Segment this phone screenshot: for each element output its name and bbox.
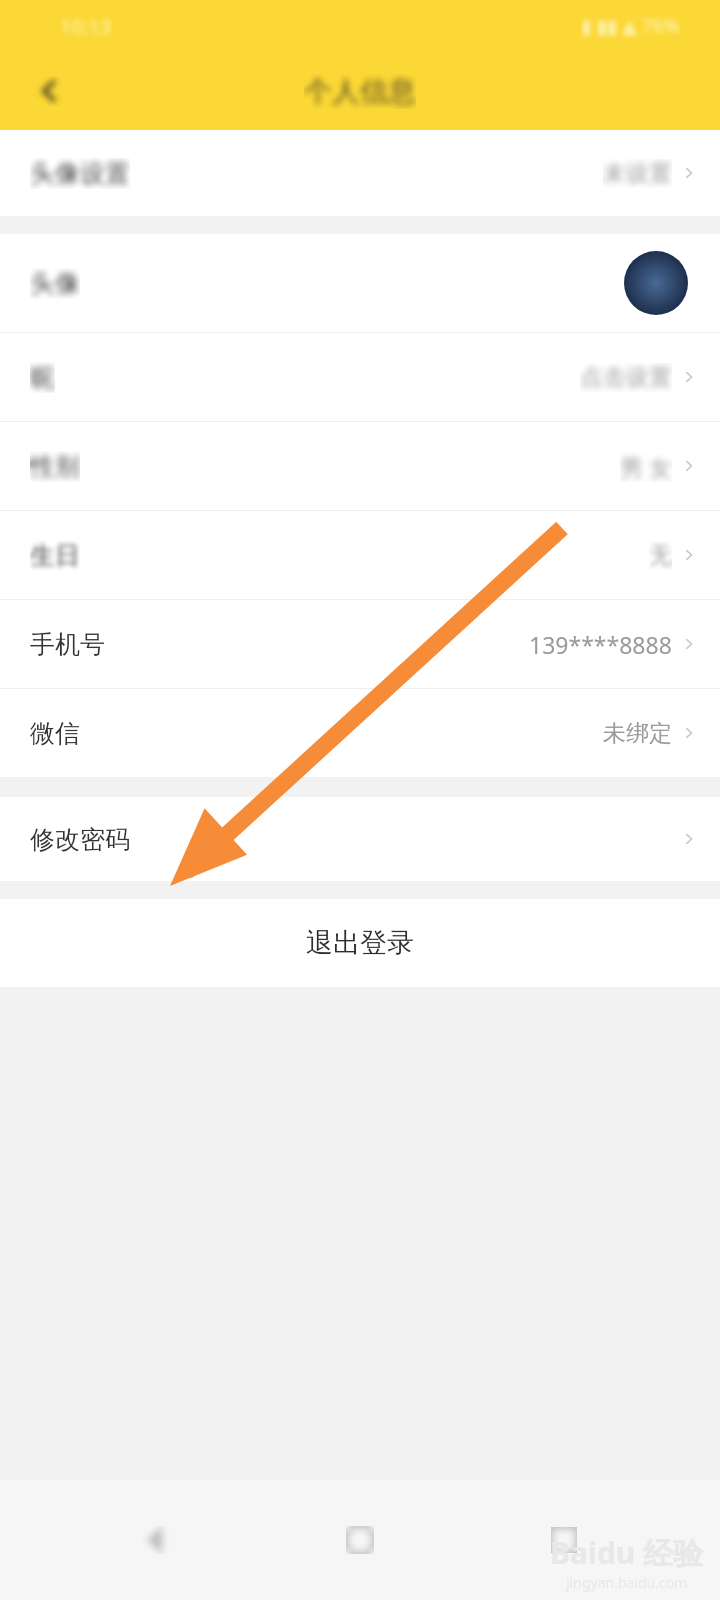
button[interactable]: 昵 (0, 333, 720, 421)
button[interactable]: Recent apps (538, 1514, 590, 1566)
staticText: 无 (649, 541, 672, 570)
button[interactable]: 手机号 (0, 600, 720, 688)
button[interactable]: 头像设置 (0, 130, 720, 216)
staticText: 性别 (30, 451, 80, 482)
staticText: 未设置 (603, 159, 672, 188)
staticText: 个人信息 (304, 74, 416, 109)
staticText: 修改密码 (30, 824, 130, 855)
button[interactable]: 头像 (0, 234, 720, 332)
staticText: 点击设置 (580, 363, 672, 392)
button[interactable]: Back (130, 1514, 182, 1566)
staticText: 未绑定 (603, 719, 672, 748)
staticText: 10:13 (60, 13, 112, 40)
staticText: 头像 (30, 268, 80, 299)
staticText: ▮ ▮▮ ▲ 76% (581, 13, 680, 39)
staticText: Baidu 经验 (550, 1532, 704, 1573)
staticText: jingyan.baidu.com (566, 1573, 688, 1592)
button[interactable]: Back (22, 63, 78, 119)
button[interactable]: 性别 (0, 422, 720, 510)
staticText: 男 女 (620, 451, 672, 482)
staticText: 手机号 (30, 629, 105, 660)
staticText: 生日 (30, 540, 80, 571)
button[interactable]: Home (334, 1514, 386, 1566)
staticText: 退出登录 (306, 926, 414, 960)
button[interactable]: 生日 (0, 511, 720, 599)
staticText: 微信 (30, 718, 80, 749)
button[interactable]: 修改密码 (0, 797, 720, 881)
button[interactable]: 微信 (0, 689, 720, 777)
staticText: 139****8888 (529, 629, 672, 660)
staticText: 昵 (30, 362, 55, 393)
staticText: 头像设置 (30, 158, 130, 189)
button[interactable]: 退出登录 (0, 899, 720, 987)
